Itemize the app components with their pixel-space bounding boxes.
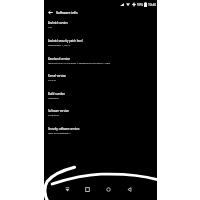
button[interactable]: Security software version [44,126,157,144]
button[interactable]: Kernel version [44,73,157,91]
button[interactable]: Android security patch level [44,38,157,56]
staticText: 7.0 [48,25,52,28]
staticText: Software version [48,109,69,113]
staticText: 3.18.31 [48,78,57,81]
staticText: 10:40 [148,3,156,7]
button[interactable]: Back [46,8,54,16]
button[interactable]: Back [44,8,157,16]
staticText: Security software version [48,127,80,131]
button[interactable]: Baseband version [44,56,157,74]
staticText: Software info [56,10,78,15]
staticText: 59% [137,3,143,7]
button[interactable]: Recent apps [83,185,92,194]
staticText: V10f-EUR [48,113,59,116]
button[interactable]: Build number [44,91,157,109]
staticText: Build number [48,92,65,96]
button[interactable]: Back [125,185,134,194]
staticText: Baseband version [48,57,71,61]
staticText: MPSS.TH.2.0.1.c1.9-00011-M8996FAAAANAZM-… [48,61,111,64]
button[interactable]: Android version [44,20,157,38]
staticText: September 1, 2017 [48,43,71,46]
staticText: MDF v3.0 Release 1 [48,131,71,134]
button[interactable]: Hide keyboard [63,185,72,194]
staticText: NRD90M [48,96,59,99]
staticText: Android security patch level [48,39,83,43]
staticText: Android version [48,21,68,25]
staticText: Kernel version [48,74,66,78]
button[interactable]: Home [104,185,113,194]
button[interactable]: Software version [44,108,157,126]
